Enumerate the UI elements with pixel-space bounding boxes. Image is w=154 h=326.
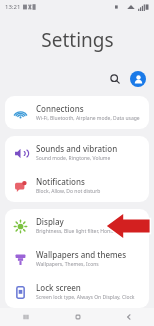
- button[interactable]: Recents: [0, 308, 52, 326]
- staticText: Display: [36, 216, 64, 227]
- staticText: Brightness, Blue light filter, Home scre…: [36, 228, 132, 235]
- staticText: Lock screen: [36, 282, 81, 293]
- staticText: Sound mode, Ringtone, Volume: [36, 155, 111, 162]
- button[interactable]: Home: [52, 308, 103, 326]
- staticText: Block, Allow, Do not disturb: [36, 188, 101, 195]
- button[interactable]: Back: [103, 308, 154, 326]
- button[interactable]: Search: [106, 70, 124, 88]
- staticText: Wallpapers and themes: [36, 249, 127, 260]
- staticText: Sounds and vibration: [36, 143, 118, 154]
- button[interactable]: Connections: [5, 96, 149, 129]
- staticText: Wi-Fi, Bluetooth, Airplane mode, Data us…: [36, 115, 140, 122]
- staticText: 13:21: [5, 3, 21, 11]
- button[interactable]: Lock screen: [5, 275, 149, 308]
- staticText: Screen lock type, Always On Display, Clo…: [36, 294, 143, 301]
- staticText: Notifications: [36, 176, 85, 187]
- button[interactable]: Notifications: [5, 169, 149, 202]
- button[interactable]: Account: [130, 71, 146, 87]
- button[interactable]: Display: [5, 209, 149, 242]
- staticText: Wallpapers, Themes, Icons: [36, 261, 99, 268]
- staticText: Settings: [41, 27, 114, 53]
- button[interactable]: Sounds and vibration: [5, 136, 149, 169]
- button[interactable]: Wallpapers and themes: [5, 242, 149, 275]
- staticText: Connections: [36, 103, 84, 114]
